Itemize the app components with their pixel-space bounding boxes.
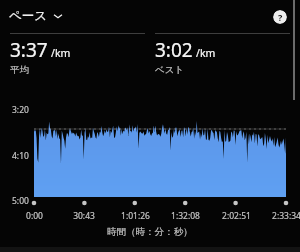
staticText: ?	[278, 11, 283, 23]
button[interactable]: 3:37	[10, 37, 71, 76]
button[interactable]: ペース	[9, 8, 63, 24]
staticText: 1:32:08	[171, 210, 200, 222]
staticText: 時間（時：分：秒）	[107, 226, 193, 238]
staticText: ペース	[9, 8, 48, 24]
staticText: 2:33:34	[272, 210, 300, 222]
staticText: 5:00	[12, 195, 29, 207]
button[interactable]: Help	[273, 10, 287, 24]
staticText: 30:43	[73, 210, 95, 222]
staticText: 2:02:51	[222, 210, 251, 222]
staticText: 3:02	[155, 37, 193, 63]
staticText: 平均	[10, 64, 29, 76]
staticText: /km	[196, 46, 216, 60]
staticText: /km	[51, 46, 71, 60]
staticText: ベスト	[155, 64, 185, 76]
staticText: 3:20	[12, 104, 29, 116]
button[interactable]: 3:02	[155, 37, 216, 76]
staticText: 4:10	[12, 150, 29, 162]
staticText: 1:01:26	[121, 210, 150, 222]
staticText: 0:00	[26, 210, 43, 222]
staticText: 3:37	[10, 37, 48, 63]
